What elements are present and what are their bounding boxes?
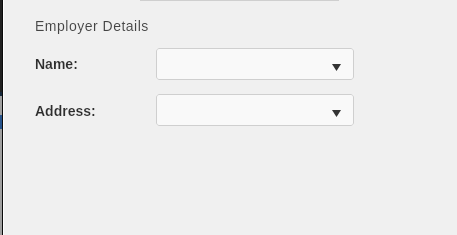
staticText: Address: xyxy=(35,103,96,119)
button[interactable]: Address: xyxy=(156,94,354,126)
button[interactable]: Name: xyxy=(156,48,354,80)
staticText: Name: xyxy=(35,56,78,72)
staticText: Employer Details xyxy=(35,18,149,34)
